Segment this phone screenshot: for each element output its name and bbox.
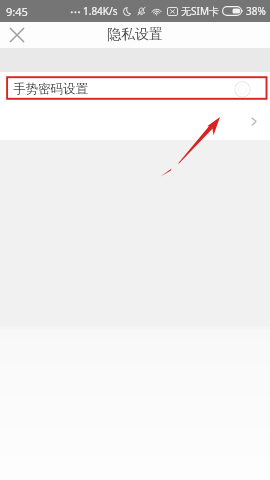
staticText: 无SIM卡: [181, 4, 219, 18]
staticText: 1.84K/s: [83, 4, 118, 18]
staticText: 9:45: [6, 4, 28, 19]
staticText: 隐私设置: [107, 26, 163, 44]
button[interactable]: Close: [3, 22, 31, 48]
staticText: 手势密码设置: [13, 81, 88, 97]
staticText: 38%: [246, 4, 266, 18]
button[interactable]: Toggle gesture password: [234, 81, 251, 98]
button[interactable]: 手势密码设置: [0, 76, 270, 102]
button[interactable]: Open: [247, 115, 259, 127]
